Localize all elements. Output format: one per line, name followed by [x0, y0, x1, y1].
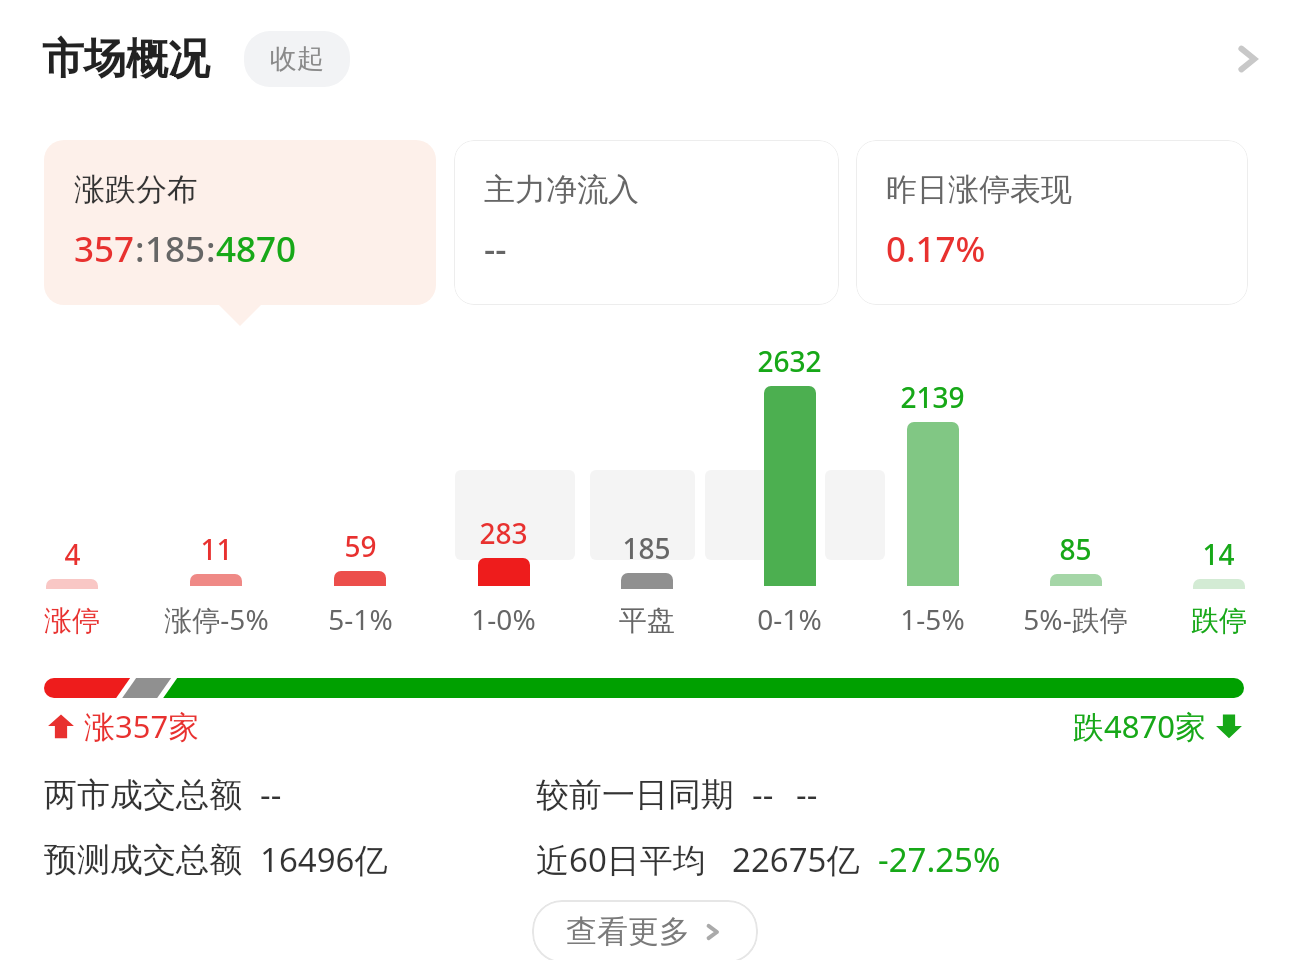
staticText: 涨跌分布: [74, 170, 198, 209]
staticText: 1-5%: [900, 600, 965, 638]
staticText: -27.25%: [878, 837, 1001, 882]
staticText: --: [796, 772, 818, 817]
staticText: 185: [622, 529, 671, 567]
staticText: 涨停: [44, 603, 100, 638]
staticText: 4: [64, 535, 81, 573]
button[interactable]: 185: [575, 529, 718, 638]
button[interactable]: 2632: [718, 342, 861, 638]
staticText: 5-1%: [328, 600, 393, 638]
button[interactable]: 收起: [244, 31, 350, 87]
staticText: 14: [1202, 535, 1235, 573]
staticText: 主力净流入: [484, 170, 639, 209]
button[interactable]: 主力净流入: [454, 140, 839, 305]
staticText: :: [206, 225, 216, 273]
button[interactable]: 85: [1004, 530, 1147, 638]
staticText: 涨357家: [84, 705, 200, 747]
staticText: 预测成交总额: [44, 839, 242, 881]
button[interactable]: 查看更多: [532, 900, 758, 960]
staticText: 283: [479, 514, 528, 552]
staticText: 跌4870家: [1073, 705, 1206, 747]
button[interactable]: 14: [1147, 535, 1290, 638]
staticText: 2139: [900, 378, 965, 416]
button[interactable]: 涨跌分布: [44, 140, 436, 305]
staticText: 0-1%: [757, 600, 822, 638]
staticText: 85: [1059, 530, 1092, 568]
staticText: --: [260, 772, 282, 817]
button[interactable]: 59: [288, 527, 432, 638]
staticText: 近60日平均: [536, 837, 706, 882]
staticText: 2632: [757, 342, 822, 380]
staticText: 涨停-5%: [164, 600, 269, 638]
staticText: 16496亿: [260, 837, 388, 882]
button[interactable]: 昨日涨停表现: [856, 140, 1248, 305]
staticText: 185: [145, 225, 206, 273]
staticText: 1-0%: [471, 600, 536, 638]
staticText: :: [135, 225, 145, 273]
button[interactable]: 283: [432, 514, 575, 638]
staticText: --: [484, 225, 507, 273]
button[interactable]: 2139: [861, 378, 1004, 638]
staticText: 市场概况: [42, 33, 210, 86]
staticText: 平盘: [619, 603, 675, 638]
staticText: 查看更多: [566, 912, 690, 951]
staticText: 跌停: [1191, 603, 1247, 638]
button[interactable]: 4: [0, 535, 144, 638]
staticText: --: [752, 772, 774, 817]
staticText: 收起: [270, 42, 324, 76]
staticText: 较前一日同期: [536, 774, 734, 816]
staticText: 22675亿: [732, 837, 860, 882]
button[interactable]: 11: [144, 530, 288, 638]
staticText: 昨日涨停表现: [886, 170, 1072, 209]
button[interactable]: 更多: [1204, 16, 1290, 102]
staticText: 5%-跌停: [1023, 600, 1128, 638]
staticText: 11: [200, 530, 233, 568]
staticText: 两市成交总额: [44, 774, 242, 816]
staticText: 0.17%: [886, 225, 986, 273]
staticText: 4870: [216, 225, 297, 273]
staticText: 357: [74, 225, 135, 273]
staticText: 59: [344, 527, 377, 565]
